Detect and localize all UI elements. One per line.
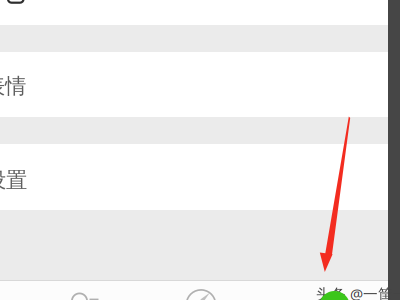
- staticText: 表情: [0, 73, 26, 99]
- staticText: 设置: [0, 167, 27, 193]
- staticText: 头条 @一筐一蓝: [316, 284, 400, 300]
- button[interactable]: 设置: [0, 144, 388, 210]
- button[interactable]: 表情: [0, 52, 388, 117]
- button[interactable]: [0, 0, 388, 25]
- button[interactable]: Contacts: [70, 283, 134, 300]
- button[interactable]: Discover: [186, 283, 250, 300]
